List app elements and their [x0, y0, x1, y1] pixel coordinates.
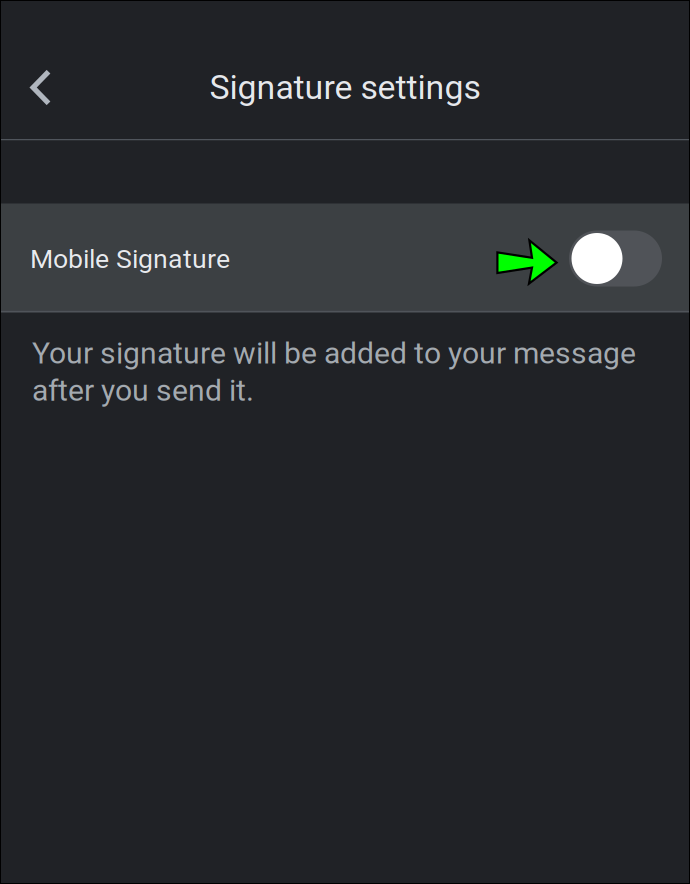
staticText: Signature settings [209, 68, 480, 107]
staticText: Mobile Signature [30, 243, 230, 275]
staticText: Your signature will be added to your mes… [32, 335, 636, 371]
button[interactable]: Back [5, 45, 77, 129]
staticText: after you send it. [32, 373, 254, 408]
button[interactable]: Mobile Signature [1, 203, 689, 312]
